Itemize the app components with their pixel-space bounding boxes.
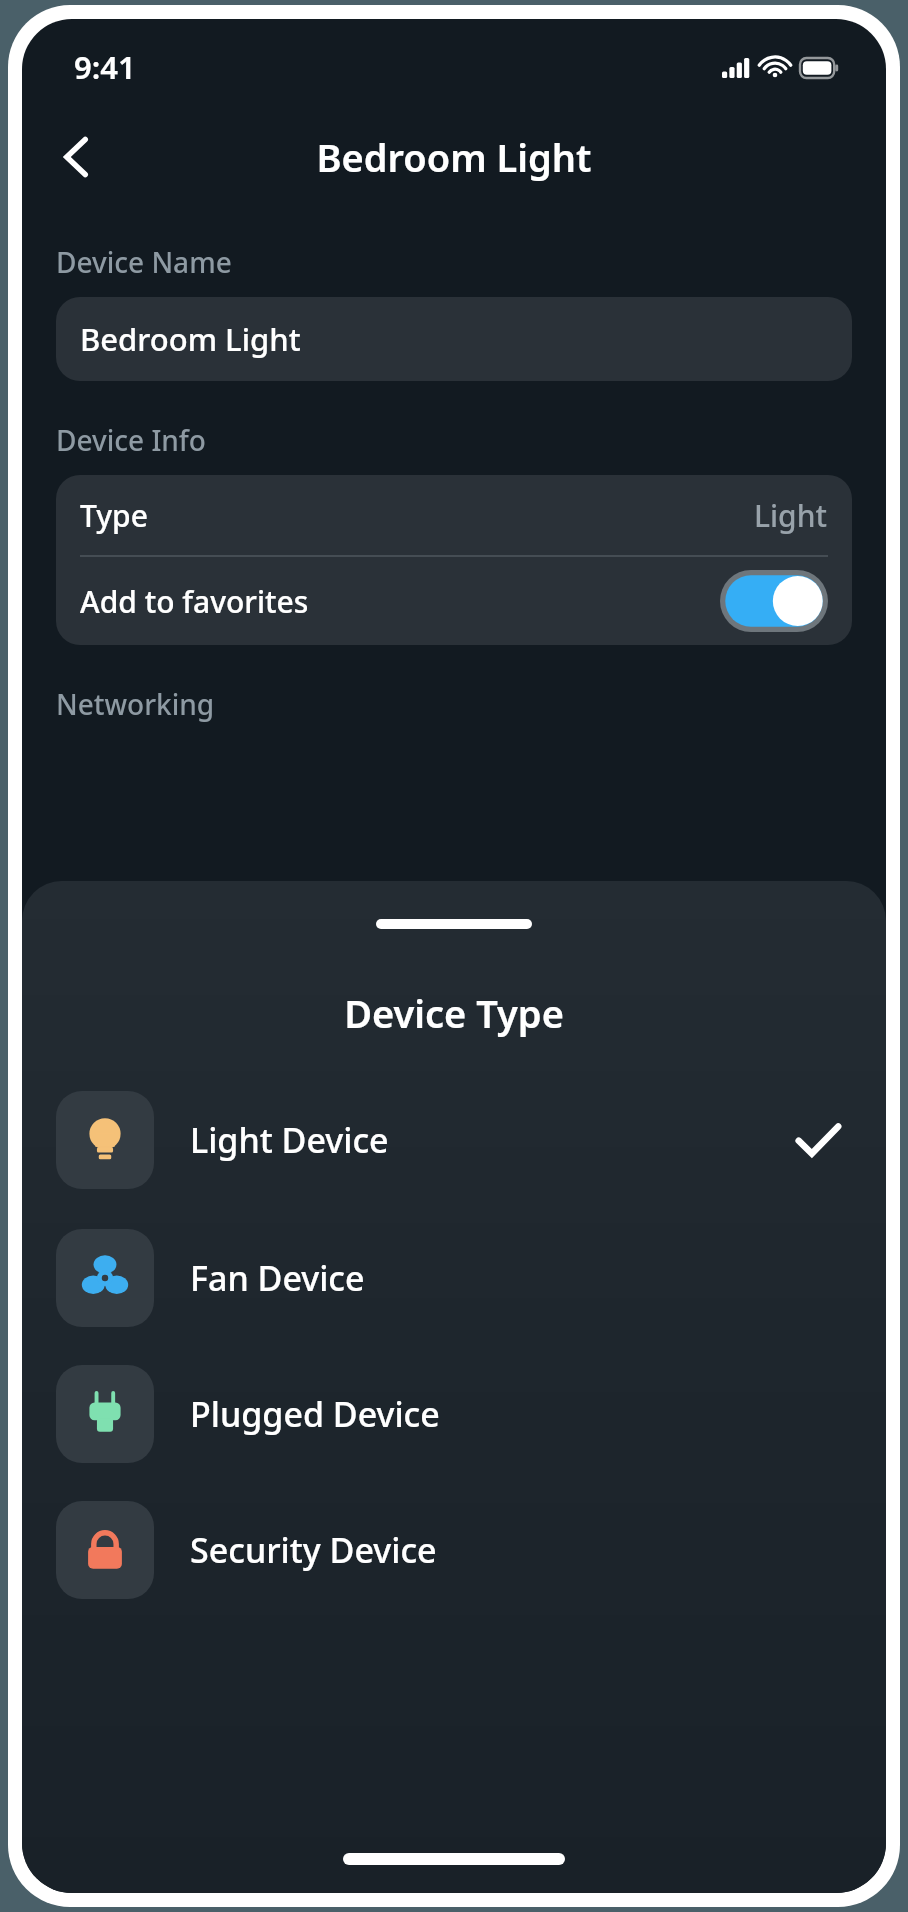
- button[interactable]: Add to favorites toggle: [720, 570, 828, 632]
- staticText: Security Device: [190, 1527, 437, 1573]
- button[interactable]: Security Device: [22, 1499, 886, 1601]
- button[interactable]: Light Device: [22, 1089, 886, 1191]
- staticText: Device Name: [56, 243, 232, 281]
- button[interactable]: Back: [44, 125, 108, 189]
- staticText: Device Info: [56, 421, 206, 459]
- staticText: Plugged Device: [190, 1391, 440, 1437]
- button[interactable]: Bedroom Light: [56, 297, 852, 381]
- button[interactable]: Add to favorites: [56, 557, 852, 645]
- staticText: Networking: [56, 685, 215, 723]
- staticText: Fan Device: [190, 1255, 365, 1301]
- staticText: Type: [80, 495, 148, 536]
- staticText: Light: [754, 495, 828, 536]
- staticText: Device Type: [22, 987, 886, 1039]
- staticText: Bedroom Light: [316, 131, 592, 183]
- button[interactable]: Fan Device: [22, 1227, 886, 1329]
- button[interactable]: Plugged Device: [22, 1363, 886, 1465]
- button[interactable]: Type: [56, 475, 852, 555]
- staticText: 9:41: [74, 46, 136, 88]
- staticText: Add to favorites: [80, 581, 309, 622]
- staticText: Bedroom Light: [80, 318, 301, 360]
- staticText: Light Device: [190, 1117, 389, 1163]
